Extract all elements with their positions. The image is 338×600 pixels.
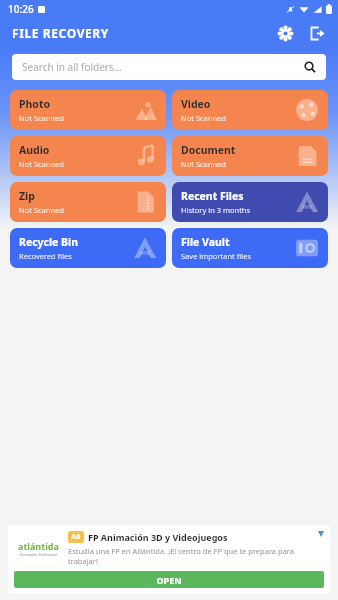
staticText: atlántida bbox=[18, 540, 59, 552]
staticText: File Vault bbox=[181, 235, 230, 249]
button[interactable]: File Vault bbox=[172, 228, 328, 268]
staticText: Estudia una FP en Atlántida. ¡El centro … bbox=[68, 546, 324, 566]
button[interactable]: Document bbox=[172, 136, 328, 176]
button[interactable]: Zip bbox=[10, 182, 166, 222]
button[interactable]: Video bbox=[172, 90, 328, 130]
staticText: Not Scanned bbox=[181, 159, 226, 169]
button[interactable]: OPEN bbox=[14, 571, 324, 588]
staticText: Ad bbox=[71, 532, 81, 542]
staticText: Recent Files bbox=[181, 189, 244, 203]
button[interactable]: Settings bbox=[274, 22, 296, 44]
staticText: Save important files bbox=[181, 251, 251, 261]
staticText: Not Scanned bbox=[19, 113, 64, 123]
staticText: FP Animación 3D y Videojuegos bbox=[88, 531, 228, 543]
staticText: Formación Profesional bbox=[20, 552, 57, 557]
staticText: OPEN bbox=[156, 574, 182, 586]
staticText: Video bbox=[181, 97, 211, 111]
staticText: Audio bbox=[19, 143, 50, 157]
button[interactable]: Recycle Bin bbox=[10, 228, 166, 268]
staticText: Photo bbox=[19, 97, 51, 111]
staticText: FILE RECOVERY bbox=[12, 25, 109, 41]
staticText: Recycle Bin bbox=[19, 235, 79, 249]
staticText: Document bbox=[181, 143, 236, 157]
staticText: Zip bbox=[19, 189, 35, 203]
staticText: Not Scanned bbox=[19, 205, 64, 215]
staticText: Search in all folders... bbox=[22, 60, 122, 74]
button[interactable]: Search in all folders... bbox=[12, 54, 326, 80]
staticText: History in 3 months bbox=[181, 205, 251, 215]
staticText: Not Scanned bbox=[19, 159, 64, 169]
staticText: Not Scanned bbox=[181, 113, 226, 123]
button[interactable]: Audio bbox=[10, 136, 166, 176]
button[interactable]: Exit bbox=[306, 22, 328, 44]
staticText: Recovered files bbox=[19, 251, 72, 261]
button[interactable]: Photo bbox=[10, 90, 166, 130]
button[interactable]: Recent Files bbox=[172, 182, 328, 222]
staticText: 10:26 bbox=[8, 2, 34, 16]
